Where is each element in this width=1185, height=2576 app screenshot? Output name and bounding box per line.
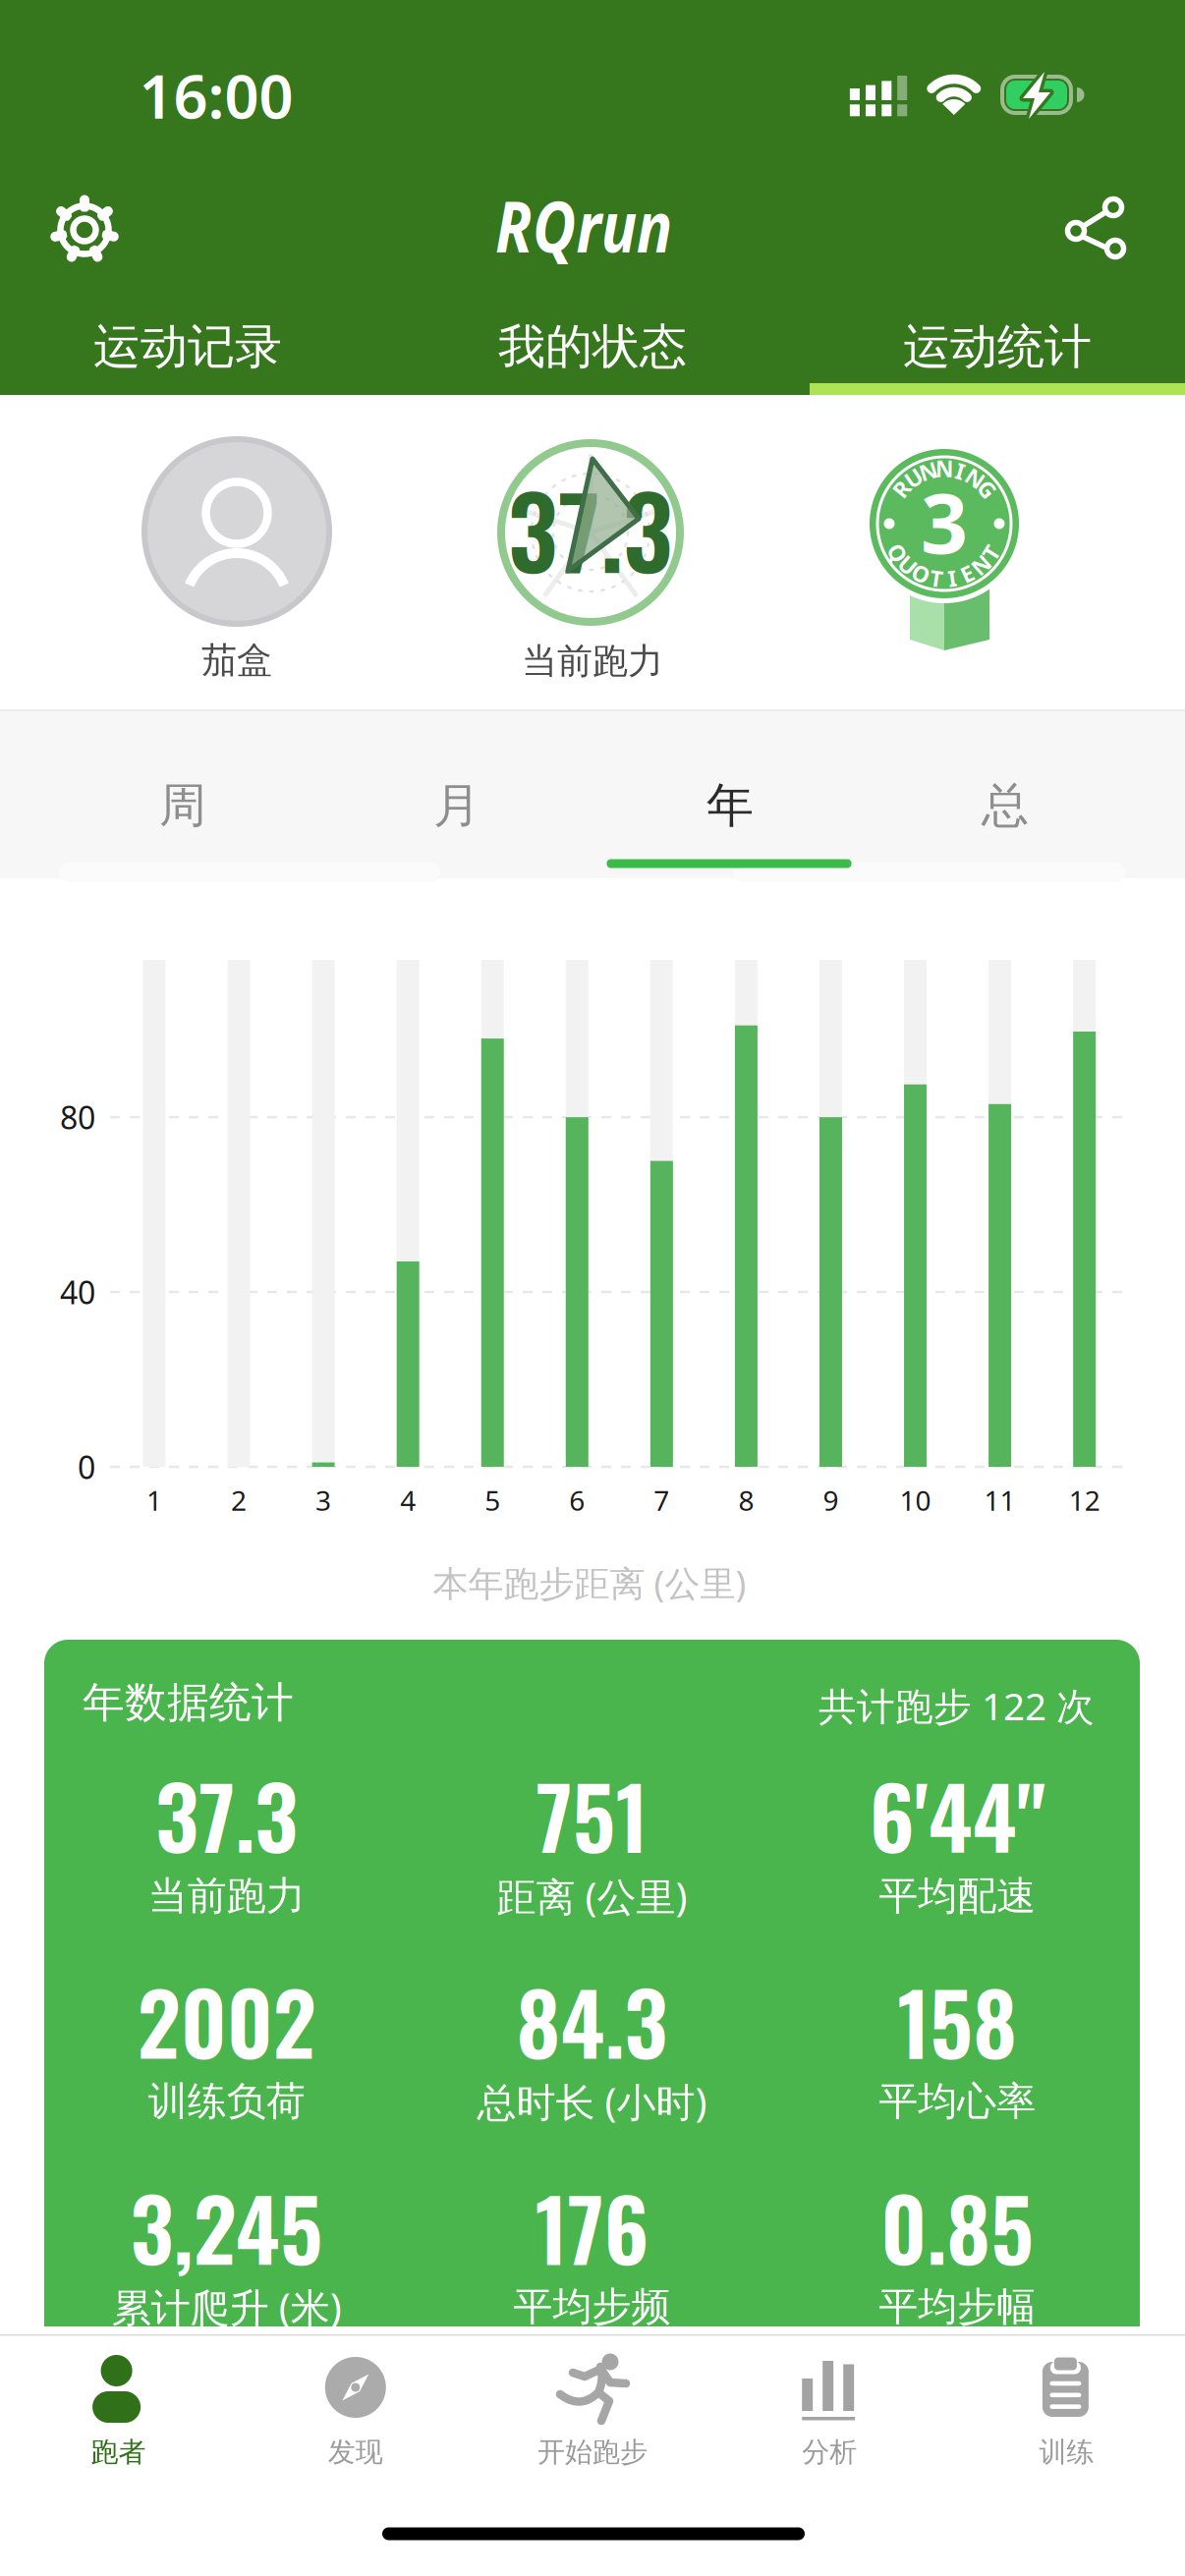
staticText: T bbox=[985, 538, 997, 568]
staticText: 周 bbox=[159, 777, 206, 835]
staticText: 分析 bbox=[802, 2435, 857, 2469]
button[interactable]: 跑者 bbox=[20, 2342, 217, 2499]
staticText: 平均配速 bbox=[879, 1872, 1036, 1920]
staticText: 当前跑力 bbox=[148, 1872, 305, 1920]
staticText: R bbox=[894, 474, 909, 504]
staticText: 3 bbox=[316, 1482, 331, 1518]
staticText: 我的状态 bbox=[498, 318, 687, 376]
staticText: 开始跑步 bbox=[537, 2435, 648, 2469]
staticText: 总 bbox=[982, 777, 1029, 835]
staticText: 2002 bbox=[137, 1957, 316, 2083]
staticText: T bbox=[930, 563, 943, 593]
staticText: 11 bbox=[984, 1482, 1016, 1518]
staticText: RQrun bbox=[479, 178, 689, 272]
staticText: E bbox=[961, 559, 974, 588]
staticText: 年 bbox=[706, 777, 754, 835]
staticText: 本年跑步距离 (公里) bbox=[433, 1559, 746, 1606]
button[interactable]: Settings bbox=[45, 191, 124, 269]
button[interactable]: 周 bbox=[55, 747, 310, 865]
button[interactable]: 开始跑步 bbox=[480, 2342, 705, 2499]
button[interactable]: 发现 bbox=[257, 2342, 454, 2499]
staticText: 5 bbox=[485, 1482, 500, 1518]
staticText: G bbox=[979, 474, 995, 504]
staticText: 40 bbox=[60, 1271, 95, 1313]
staticText: 距离 (公里) bbox=[497, 1870, 687, 1922]
staticText: 训练 bbox=[1039, 2435, 1094, 2469]
staticText: I bbox=[956, 456, 965, 486]
button[interactable]: Share bbox=[1054, 192, 1133, 270]
staticText: 平均步频 bbox=[513, 2283, 671, 2331]
staticText: Q bbox=[889, 538, 906, 568]
staticText: 1 bbox=[146, 1482, 162, 1518]
button[interactable]: 训练 bbox=[968, 2342, 1165, 2499]
button[interactable]: 年 bbox=[602, 747, 858, 865]
staticText: 751 bbox=[536, 1751, 648, 1877]
staticText: 3,245 bbox=[130, 2163, 323, 2289]
staticText: U bbox=[905, 463, 922, 493]
staticText: 37.3 bbox=[508, 456, 673, 601]
staticText: 10 bbox=[900, 1482, 931, 1518]
staticText: 3 bbox=[921, 467, 968, 576]
staticText: 8 bbox=[738, 1482, 754, 1518]
staticText: I bbox=[948, 563, 957, 593]
staticText: 0 bbox=[78, 1446, 95, 1488]
staticText: 7 bbox=[654, 1482, 670, 1518]
staticText: 12 bbox=[1069, 1482, 1100, 1518]
staticText: N bbox=[966, 463, 984, 493]
staticText: 平均心率 bbox=[879, 2077, 1036, 2126]
staticText: U bbox=[899, 550, 916, 580]
staticText: 80 bbox=[60, 1096, 95, 1138]
staticText: 4 bbox=[400, 1482, 416, 1518]
staticText: 共计跑步 122 次 bbox=[818, 1680, 1095, 1731]
staticText: 运动记录 bbox=[93, 318, 282, 376]
staticText: 发现 bbox=[328, 2435, 383, 2469]
staticText: 158 bbox=[897, 1957, 1017, 2083]
button[interactable]: 我的状态 bbox=[405, 308, 780, 386]
staticText: 9 bbox=[823, 1482, 839, 1518]
button[interactable]: 分析 bbox=[731, 2342, 928, 2499]
staticText: N bbox=[935, 454, 953, 483]
staticText: 2 bbox=[231, 1482, 247, 1518]
staticText: 176 bbox=[535, 2163, 649, 2289]
staticText: 月 bbox=[433, 777, 480, 835]
staticText: 训练负荷 bbox=[148, 2077, 305, 2126]
staticText: 茄盒 bbox=[201, 638, 272, 682]
staticText: 0.85 bbox=[881, 2163, 1034, 2289]
staticText: 84.3 bbox=[516, 1957, 668, 2083]
button[interactable]: 运动统计 bbox=[810, 308, 1185, 386]
staticText: N bbox=[972, 550, 990, 580]
staticText: 运动统计 bbox=[903, 318, 1092, 376]
button[interactable]: 月 bbox=[329, 747, 585, 865]
staticText: N bbox=[919, 456, 937, 486]
staticText: 累计爬升 (米) bbox=[112, 2281, 342, 2333]
staticText: 平均步幅 bbox=[879, 2283, 1036, 2331]
button[interactable]: 总 bbox=[877, 747, 1133, 865]
staticText: 总时长 (小时) bbox=[477, 2075, 707, 2128]
staticText: O bbox=[912, 559, 930, 588]
staticText: 6'44" bbox=[869, 1751, 1045, 1877]
button[interactable]: 运动记录 bbox=[0, 308, 375, 386]
staticText: 当前跑力 bbox=[522, 639, 663, 683]
staticText: 跑者 bbox=[91, 2435, 146, 2469]
staticText: 37.3 bbox=[156, 1751, 298, 1877]
staticText: 6 bbox=[569, 1482, 585, 1518]
staticText: 年数据统计 bbox=[83, 1677, 294, 1728]
staticText: 16:00 bbox=[139, 55, 293, 135]
